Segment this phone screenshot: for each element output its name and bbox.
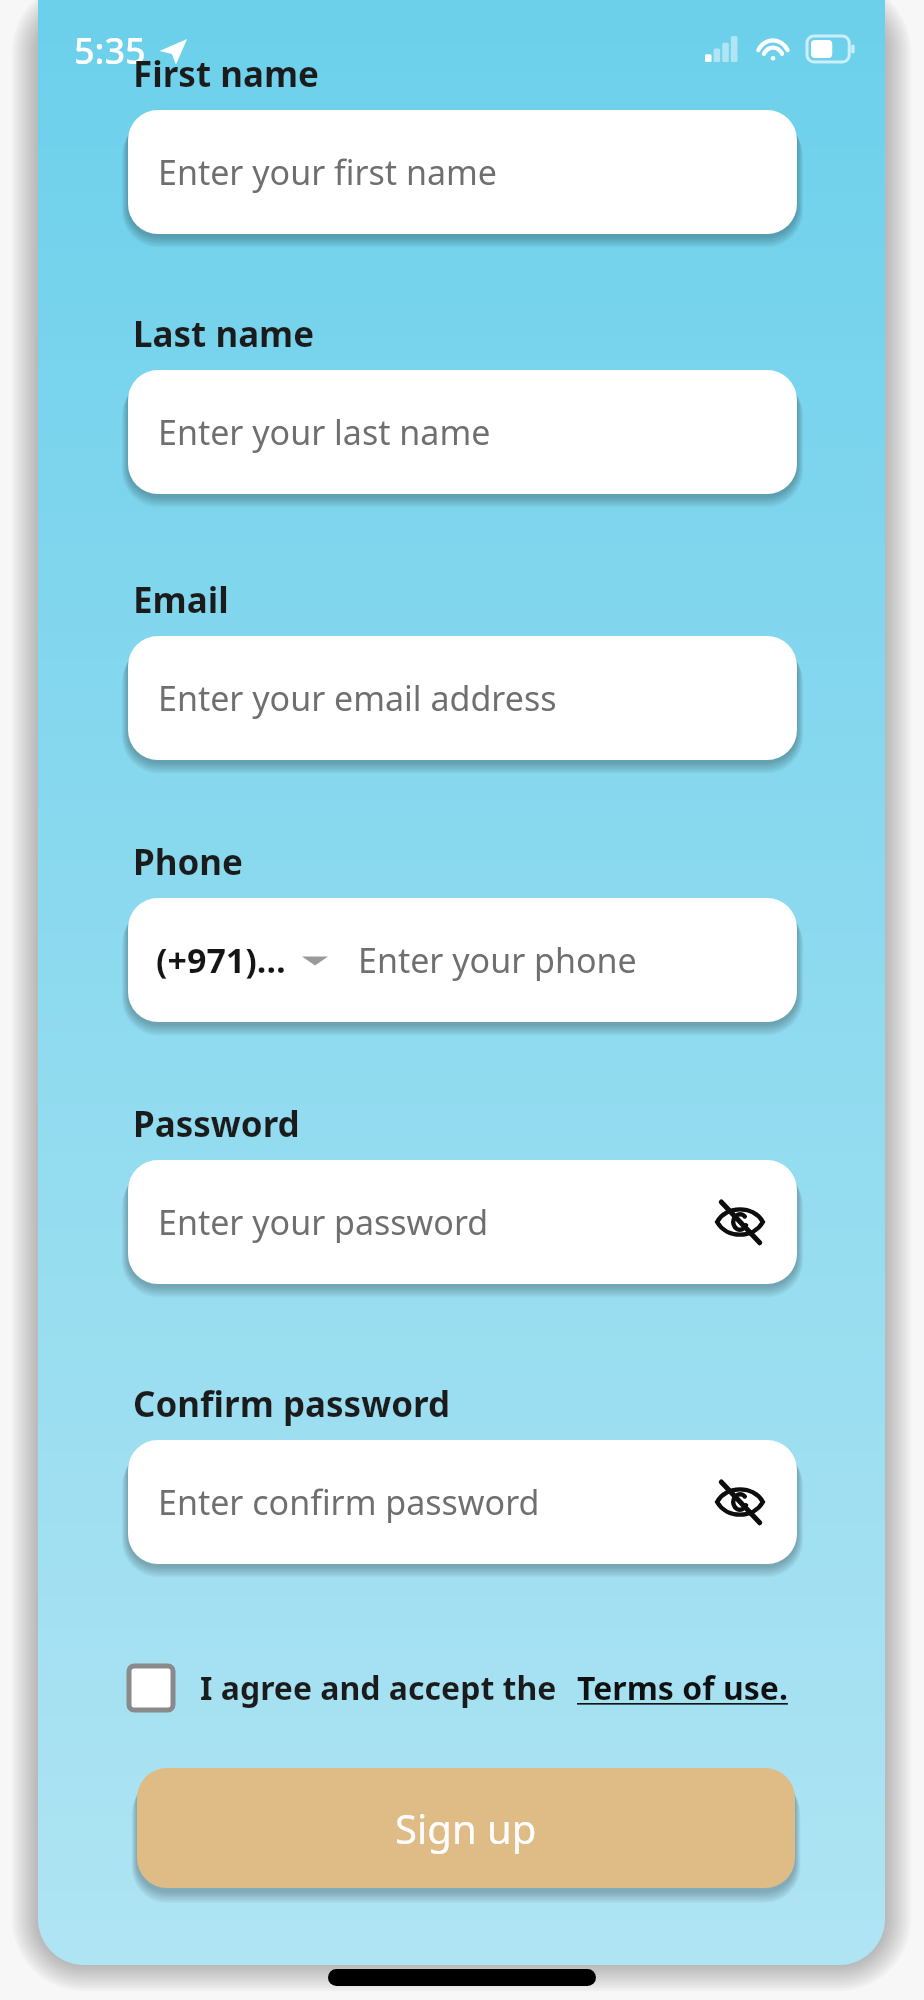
staticText: Password [133,1100,300,1148]
button[interactable]: Enter your password [128,1160,797,1284]
button[interactable]: Accept terms checkbox [128,1665,174,1711]
button[interactable]: Show password [705,1187,775,1257]
button[interactable]: Sign up [137,1768,795,1888]
staticText: Last name [133,310,315,358]
staticText: Phone [133,838,244,886]
staticText: (+971)… [156,937,286,983]
button[interactable]: Select country code [156,937,332,983]
staticText: Enter confirm password [158,1479,540,1525]
staticText: Enter your password [158,1199,489,1245]
staticText: Enter your phone [358,937,637,983]
button[interactable]: Enter your email address [128,636,797,760]
staticText: Enter your last name [158,409,491,455]
button[interactable]: Select country code [128,898,797,1022]
button[interactable]: Terms of use. [577,1666,788,1710]
button[interactable]: Enter your last name [128,370,797,494]
staticText: 5:35 [74,26,146,75]
button[interactable]: I agree and accept the [200,1666,557,1710]
button[interactable]: Show password [705,1467,775,1537]
staticText: Enter your email address [158,675,557,721]
staticText: Sign up [395,1801,537,1855]
staticText: Confirm password [133,1380,451,1428]
button[interactable]: Enter your first name [128,110,797,234]
staticText: Enter your first name [158,149,498,195]
staticText: Email [133,576,229,624]
button[interactable]: Enter confirm password [128,1440,797,1564]
staticText: First name [133,50,319,98]
